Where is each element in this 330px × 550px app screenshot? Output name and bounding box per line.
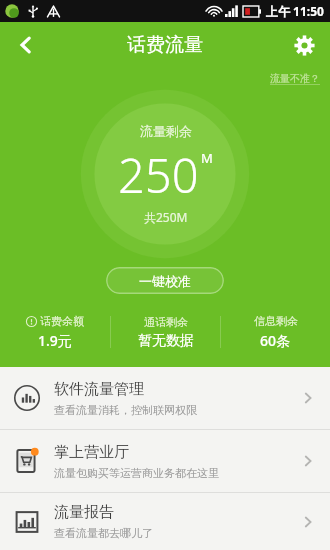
staticText: 上午 11:50 [266, 3, 324, 19]
button[interactable]: 通话剩余 [111, 308, 220, 356]
button[interactable]: Back [6, 25, 46, 65]
staticText: 暂无数据 [138, 332, 194, 350]
staticText: 查看流量消耗，控制联网权限 [54, 403, 197, 417]
button[interactable]: 掌上营业厅 [0, 430, 330, 492]
staticText: 查看流量都去哪儿了 [54, 526, 153, 540]
staticText: 250 [118, 143, 199, 207]
button[interactable]: 流量不准？ [270, 72, 320, 85]
staticText: 流量报告 [54, 503, 114, 522]
button[interactable]: 软件流量管理 [0, 367, 330, 429]
button[interactable]: 流量报告 [0, 493, 330, 550]
staticText: 1.9元 [38, 331, 72, 350]
staticText: 60条 [260, 331, 291, 350]
staticText: M [201, 149, 213, 167]
button[interactable]: 一键校准 [106, 267, 224, 294]
staticText: 通话剩余 [144, 315, 188, 329]
staticText: 流量剩余 [140, 123, 192, 139]
button[interactable]: 信息剩余 [221, 308, 330, 356]
button[interactable]: 话费余额 [0, 308, 110, 356]
staticText: 信息剩余 [254, 314, 298, 328]
staticText: 话费余额 [40, 314, 84, 328]
staticText: 掌上营业厅 [54, 443, 129, 462]
staticText: 流量不准？ [270, 72, 320, 85]
staticText: 话费流量 [127, 33, 203, 57]
button[interactable]: Settings [284, 25, 324, 65]
staticText: 软件流量管理 [54, 380, 144, 399]
staticText: 流量包购买等运营商业务都在这里 [54, 466, 219, 480]
staticText: 一键校准 [139, 273, 191, 289]
staticText: 共250M [144, 209, 188, 225]
